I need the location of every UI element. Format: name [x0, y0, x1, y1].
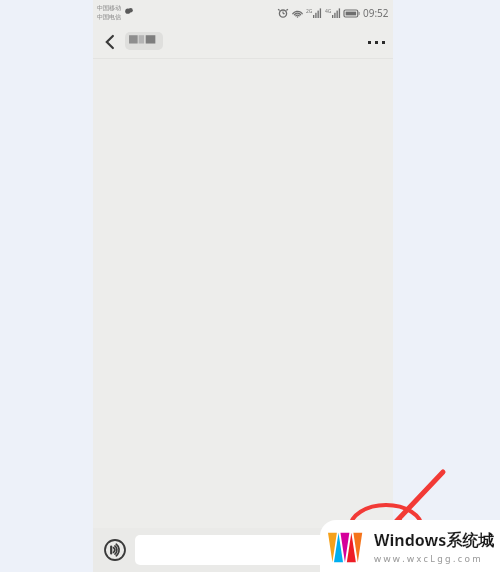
- staticText: w w w . w x c L g g . c o m: [374, 552, 481, 564]
- button[interactable]: Message input: [135, 535, 381, 565]
- button[interactable]: Back: [93, 25, 127, 59]
- staticText: 4G: [325, 8, 332, 15]
- staticText: 2G: [306, 8, 313, 15]
- staticText: 中国移动: [97, 4, 121, 12]
- button[interactable]: More options: [359, 25, 393, 59]
- staticText: Windows系统城: [374, 529, 495, 551]
- button[interactable]: Contact name: [127, 32, 161, 50]
- staticText: 中国电信: [97, 13, 121, 21]
- staticText: 09:52: [363, 6, 389, 20]
- button[interactable]: Voice input: [99, 534, 131, 566]
